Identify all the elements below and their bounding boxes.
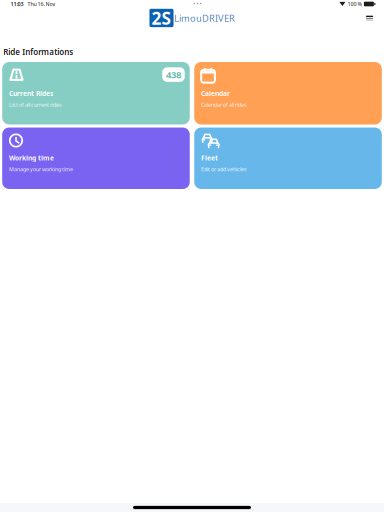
staticText: Edit or add vehicles — [201, 166, 247, 173]
staticText: Thu 16. Nov — [27, 0, 55, 8]
button[interactable]: Calendar — [194, 62, 382, 124]
staticText: 100 % — [347, 0, 361, 8]
button[interactable]: 438 — [2, 62, 190, 124]
staticText: Working time — [9, 153, 54, 162]
staticText: 2S — [151, 6, 171, 29]
staticText: Fleet — [201, 153, 218, 162]
button[interactable]: Fleet — [194, 127, 382, 189]
staticText: Calendar — [201, 89, 230, 98]
staticText: Calendar of all rides — [201, 101, 247, 108]
staticText: Manage your working time — [9, 166, 73, 173]
staticText: LimouDRIVER — [174, 12, 235, 24]
staticText: Ride Informations — [3, 46, 73, 57]
staticText: List of all current rides — [9, 101, 62, 108]
button[interactable]: Menu — [360, 9, 378, 27]
staticText: 438 — [166, 68, 181, 81]
button[interactable]: Working time — [2, 127, 190, 189]
staticText: Current Rides — [9, 89, 53, 98]
staticText: 11:03 — [10, 0, 23, 8]
